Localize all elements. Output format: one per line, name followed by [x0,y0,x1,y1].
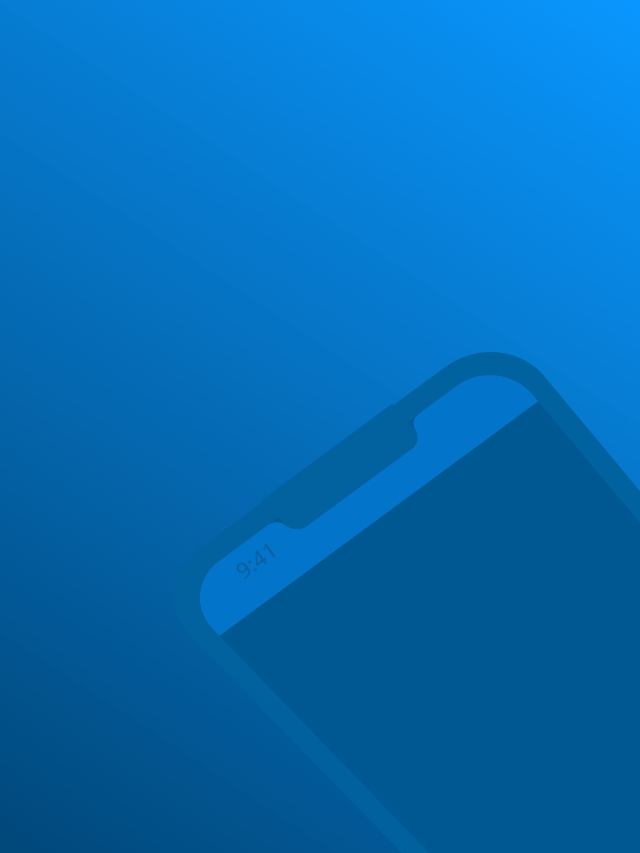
staticText: 9:41 [234,545,279,575]
